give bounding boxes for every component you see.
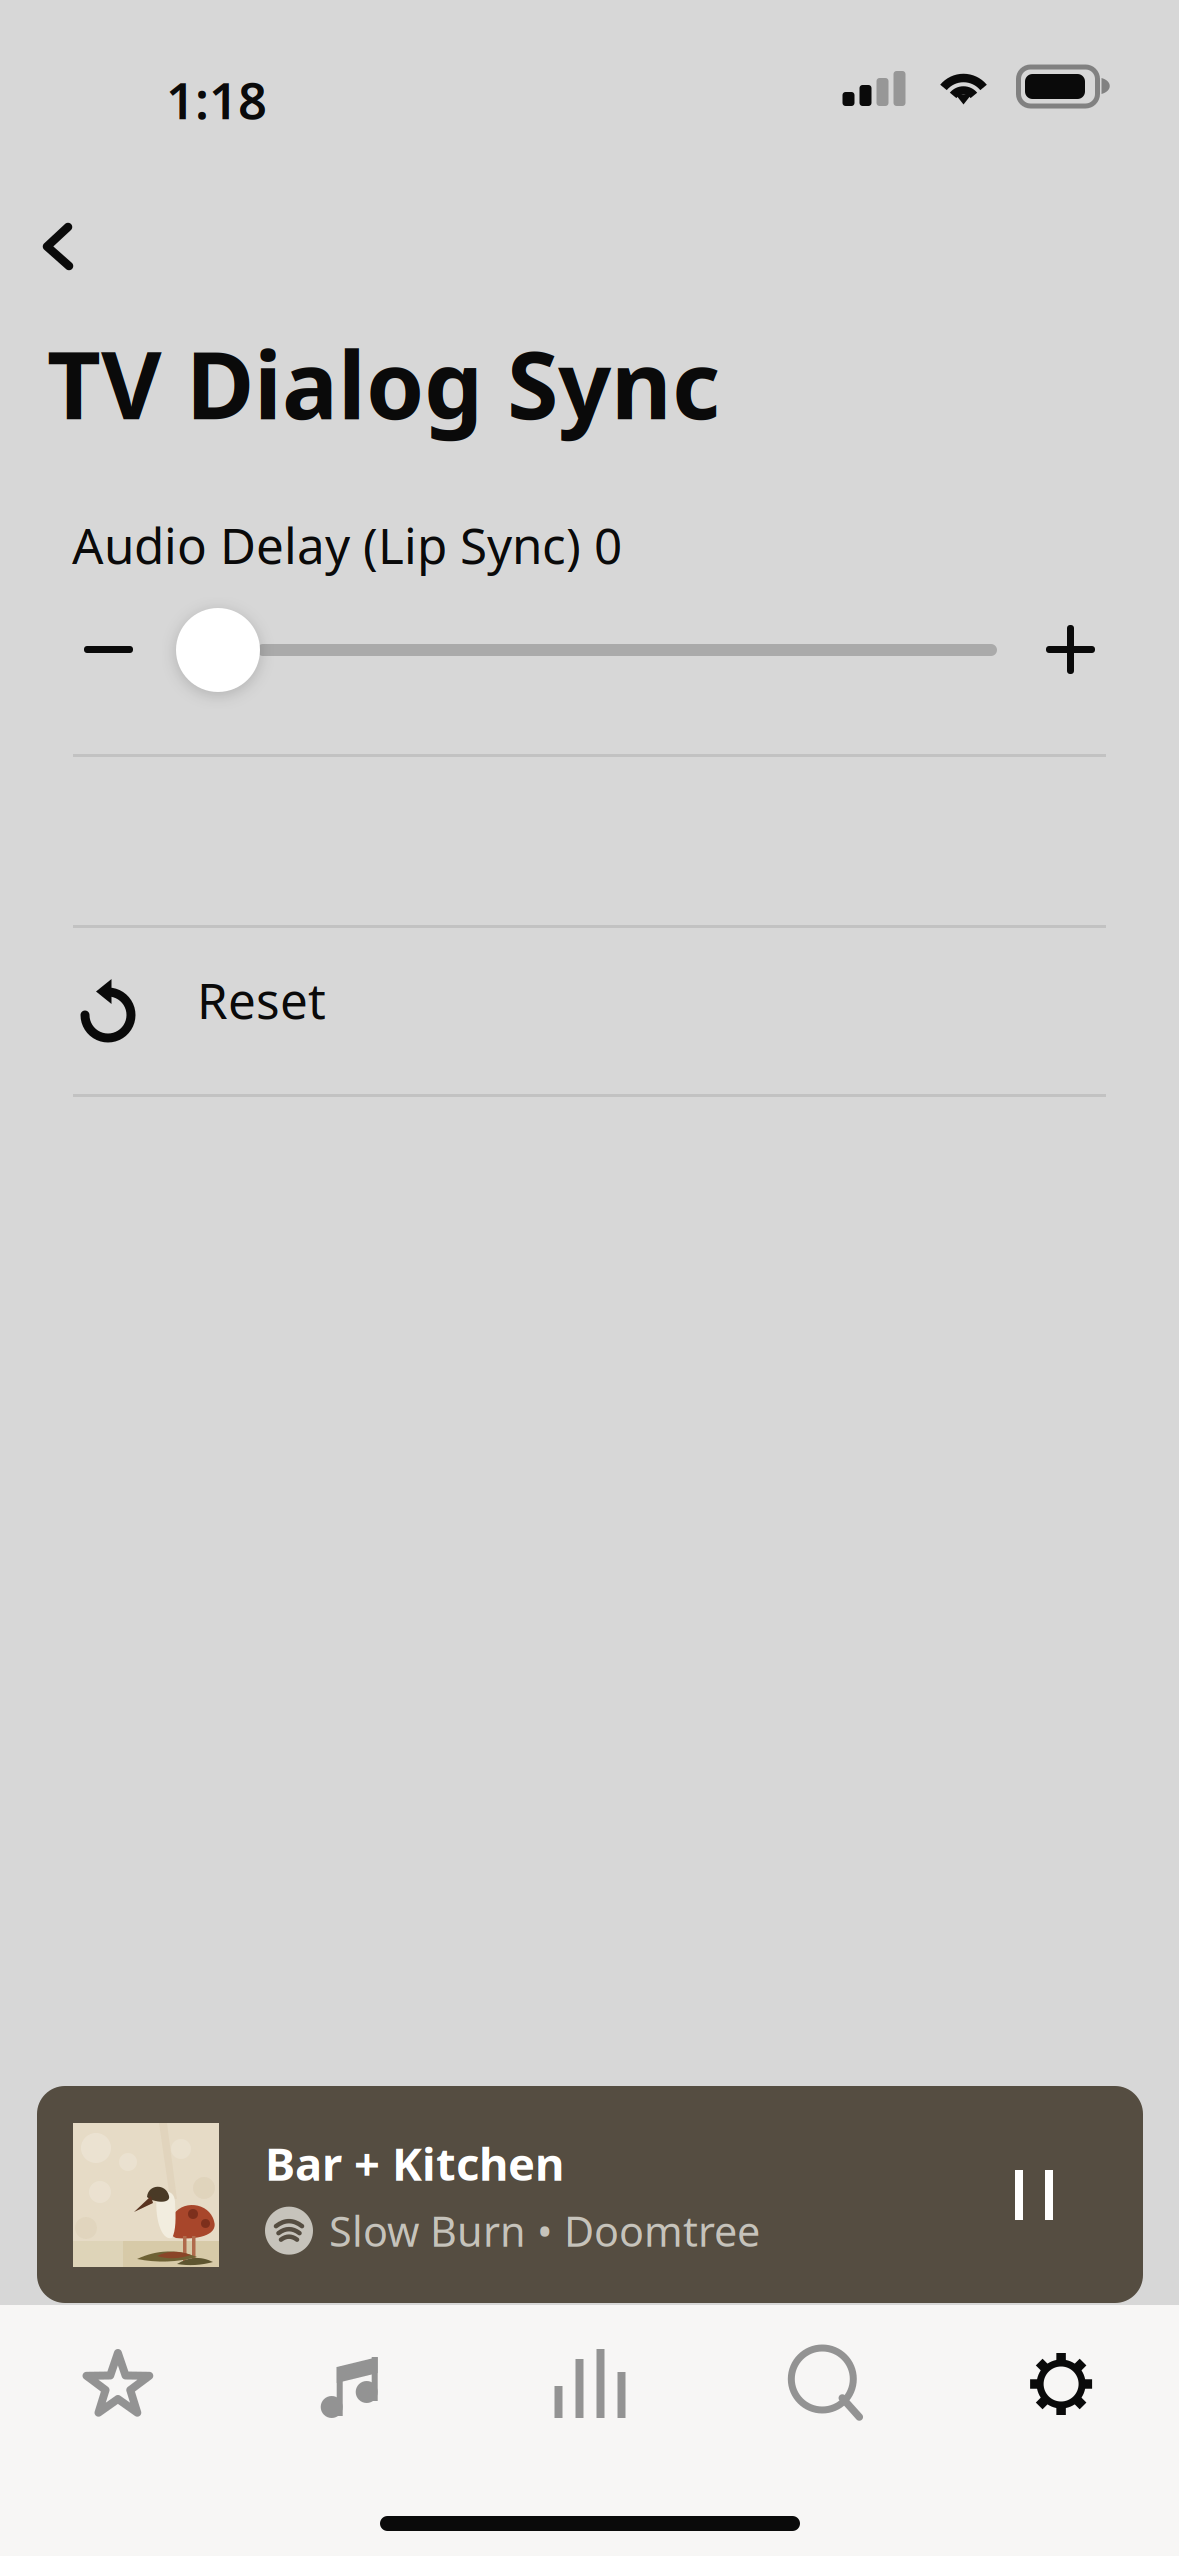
button[interactable]: Settings [943,2314,1179,2454]
staticText: TV Dialog Sync [47,321,720,445]
staticText: Reset [197,967,326,1032]
staticText: Bar + Kitchen [265,2133,564,2193]
button[interactable]: Increase audio delay [1004,584,1136,716]
button[interactable]: Bar + Kitchen [37,2086,1143,2303]
staticText: Slow Burn • Doomtree [329,2203,760,2258]
staticText: Audio Delay (Lip Sync) 0 [72,512,622,577]
staticText: 1:18 [166,66,267,133]
button[interactable]: Decrease audio delay [42,584,174,716]
button[interactable]: Reset [0,928,1179,1097]
button[interactable]: Back [0,182,132,314]
button[interactable]: Search [707,2314,943,2454]
button[interactable]: Rooms [472,2314,707,2454]
button[interactable]: Favorites [0,2314,236,2454]
button[interactable]: Browse [236,2314,472,2454]
